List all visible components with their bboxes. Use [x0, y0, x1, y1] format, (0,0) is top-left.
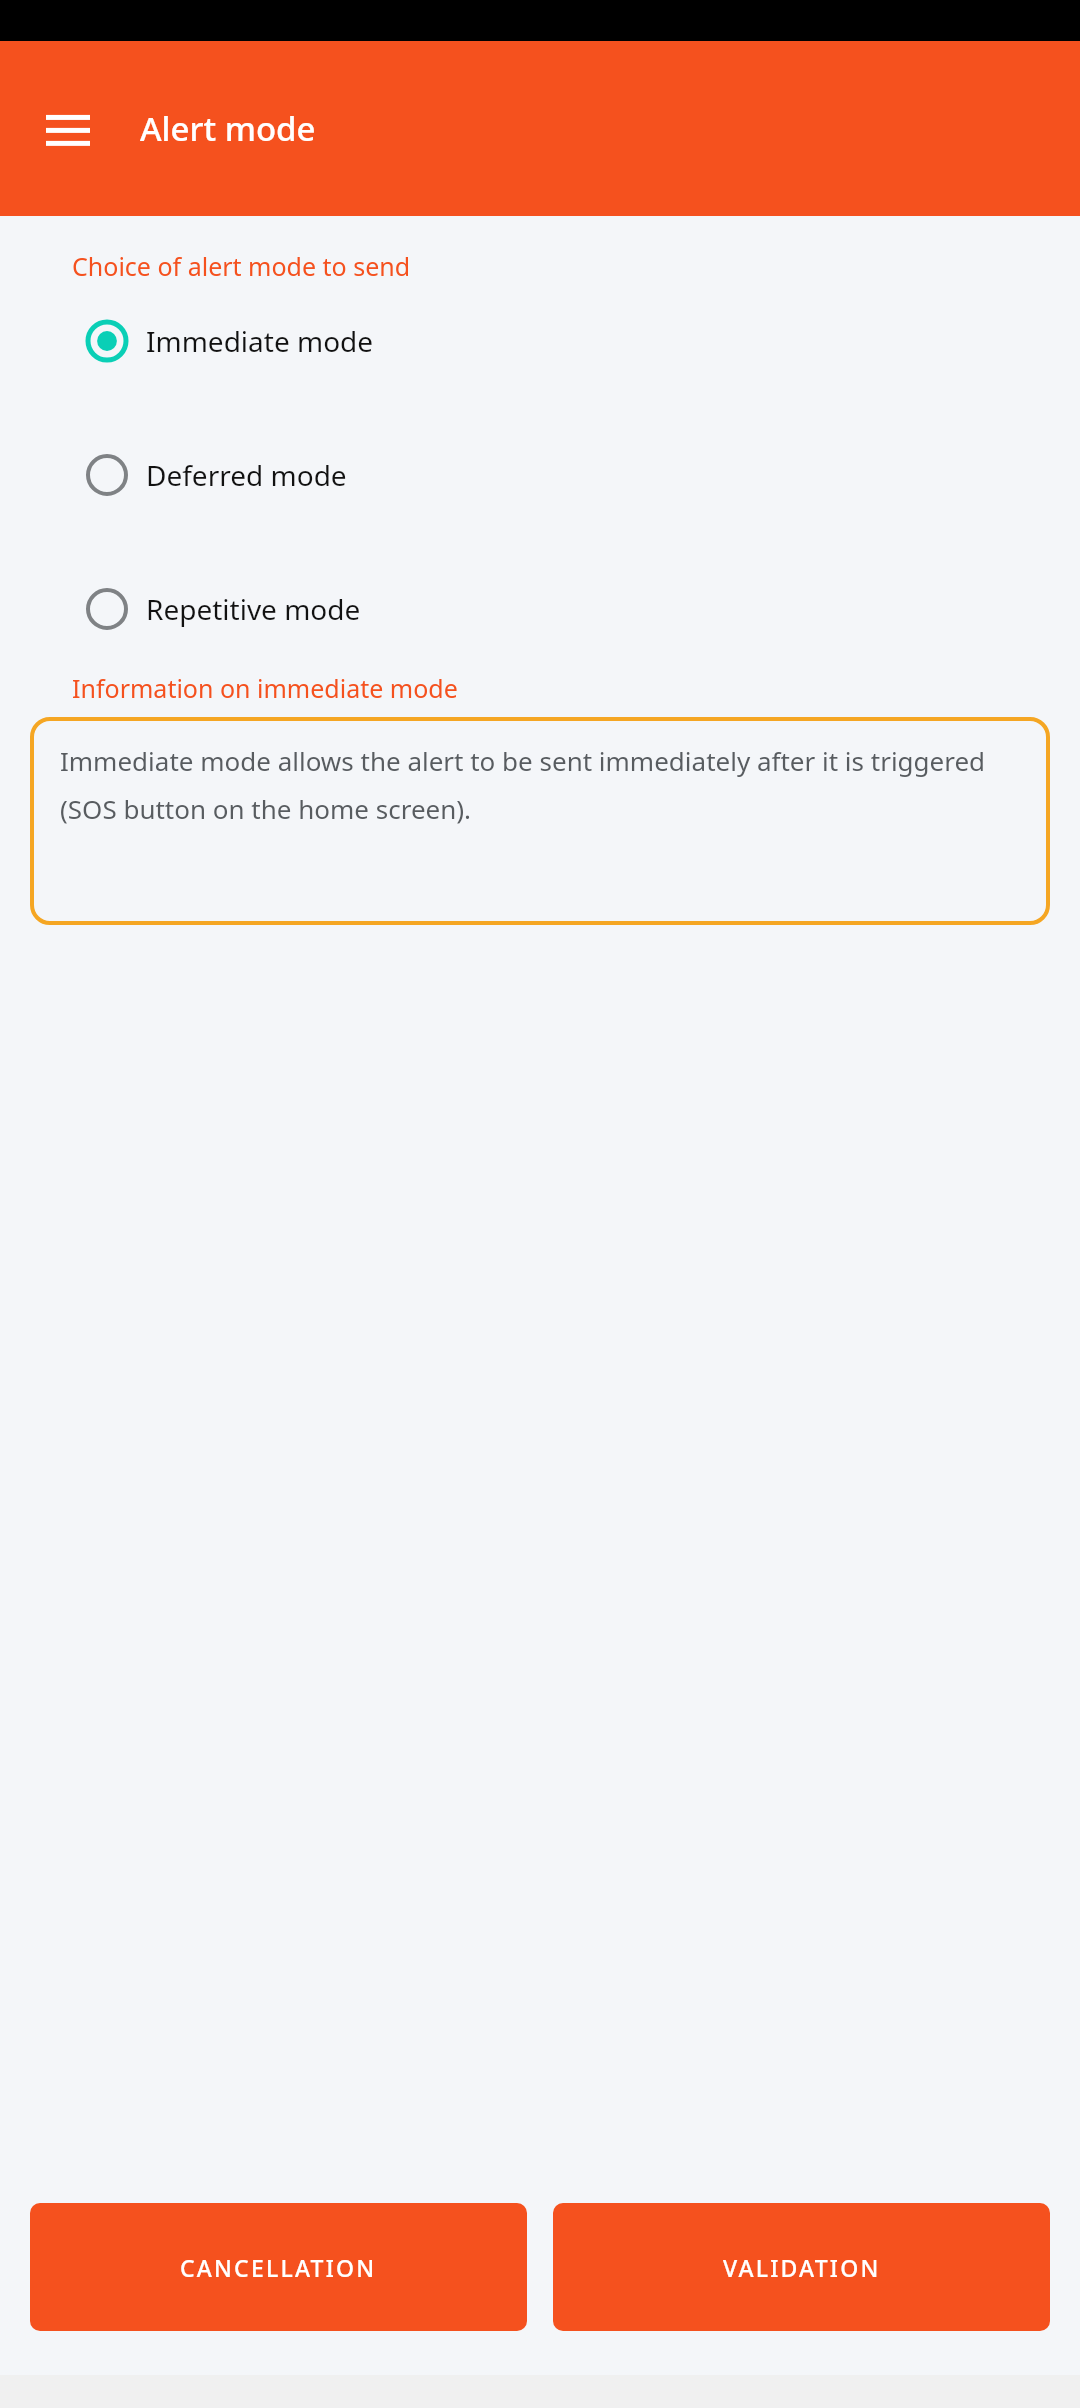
staticText: Information on immediate mode	[72, 671, 458, 705]
staticText: Deferred mode	[146, 456, 347, 494]
staticText: CANCELLATION	[180, 2252, 377, 2283]
staticText: Repetitive mode	[146, 590, 361, 628]
staticText: VALIDATION	[723, 2252, 881, 2283]
button[interactable]: Repetitive mode	[0, 565, 1080, 653]
staticText: Alert mode	[140, 106, 316, 151]
button[interactable]: Deferred mode	[0, 431, 1080, 519]
staticText: Immediate mode	[146, 322, 374, 360]
button[interactable]: Open navigation menu	[30, 91, 106, 167]
button[interactable]: VALIDATION	[553, 2203, 1050, 2331]
button[interactable]: Immediate mode	[0, 297, 1080, 385]
staticText: Choice of alert mode to send	[72, 249, 411, 283]
staticText: Immediate mode allows the alert to be se…	[60, 743, 1024, 826]
button[interactable]: CANCELLATION	[30, 2203, 527, 2331]
